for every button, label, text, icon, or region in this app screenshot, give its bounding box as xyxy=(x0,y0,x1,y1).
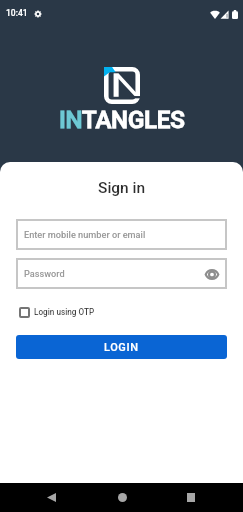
button[interactable]: LOGIN xyxy=(16,335,227,359)
staticText: Login using OTP xyxy=(34,307,95,317)
button[interactable]: Enter mobile number or email xyxy=(16,219,227,250)
button[interactable]: Home xyxy=(109,488,135,507)
button[interactable]: Show password xyxy=(204,266,220,282)
button[interactable]: Back xyxy=(38,488,64,507)
staticText: INTANGLES xyxy=(59,106,185,134)
button[interactable]: Recent apps xyxy=(178,488,204,507)
staticText: 10:41 xyxy=(6,8,28,18)
staticText: Sign in xyxy=(98,179,146,197)
staticText: Password xyxy=(24,268,65,279)
staticText: LOGIN xyxy=(104,341,139,354)
staticText: Enter mobile number or email xyxy=(24,229,146,240)
button[interactable]: Login using OTP xyxy=(19,305,95,319)
button[interactable]: Password xyxy=(16,258,227,289)
